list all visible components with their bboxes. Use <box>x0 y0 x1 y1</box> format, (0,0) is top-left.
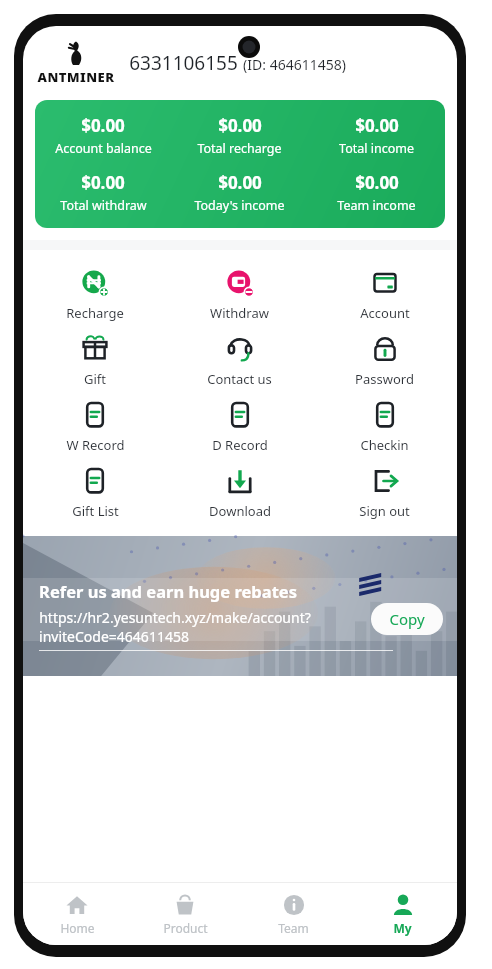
staticText: 6331106155 <box>129 50 238 76</box>
button[interactable]: D Record <box>167 394 312 460</box>
button[interactable]: $0.00 <box>35 171 171 214</box>
staticText: Team <box>278 920 309 936</box>
staticText: Account balance <box>55 140 152 157</box>
staticText: Team income <box>337 197 416 214</box>
staticText: My <box>393 920 412 936</box>
staticText: Refer us and earn huge rebates <box>39 580 297 602</box>
staticText: Today's income <box>194 197 285 214</box>
button[interactable]: $0.00 <box>308 171 445 214</box>
staticText: W Record <box>66 436 125 454</box>
staticText: $0.00 <box>218 171 262 194</box>
button[interactable]: $0.00 <box>171 114 308 157</box>
button[interactable]: $0.00 <box>171 171 308 214</box>
staticText: https://hr2.yesuntech.xyz/make/account? <box>39 608 311 627</box>
staticText: Product <box>163 920 208 936</box>
button[interactable]: Checkin <box>312 394 457 460</box>
button[interactable]: Copy <box>371 603 443 635</box>
button[interactable]: $0.00 <box>35 114 171 157</box>
button[interactable]: Refer us and earn huge rebates <box>23 536 457 676</box>
button[interactable]: Recharge <box>23 262 167 328</box>
staticText: Gift List <box>72 502 119 520</box>
button[interactable]: Gift List <box>23 460 167 526</box>
staticText: Password <box>355 370 414 388</box>
staticText: Contact us <box>207 370 272 388</box>
staticText: Account <box>360 304 410 322</box>
staticText: $0.00 <box>355 171 399 194</box>
button[interactable]: Team <box>239 883 348 945</box>
staticText: Withdraw <box>210 304 269 322</box>
staticText: $0.00 <box>81 114 125 137</box>
button[interactable]: Withdraw <box>167 262 312 328</box>
staticText: $0.00 <box>218 114 262 137</box>
staticText: $0.00 <box>355 114 399 137</box>
staticText: Total income <box>339 140 414 157</box>
staticText: Download <box>209 502 271 520</box>
button[interactable]: Account <box>312 262 457 328</box>
button[interactable]: Gift <box>23 328 167 394</box>
staticText: Home <box>60 920 95 936</box>
staticText: Copy <box>389 609 425 629</box>
staticText: Total recharge <box>197 140 282 157</box>
staticText: Recharge <box>66 304 124 322</box>
button[interactable]: Home <box>23 883 131 945</box>
staticText: Sign out <box>359 502 410 520</box>
staticText: $0.00 <box>81 171 125 194</box>
staticText: Total withdraw <box>60 197 147 214</box>
button[interactable]: W Record <box>23 394 167 460</box>
button[interactable]: Sign out <box>312 460 457 526</box>
button[interactable]: My <box>348 883 457 945</box>
button[interactable]: Product <box>131 883 239 945</box>
staticText: D Record <box>212 436 268 454</box>
button[interactable]: Password <box>312 328 457 394</box>
staticText: Gift <box>84 370 106 388</box>
staticText: Checkin <box>360 436 409 454</box>
button[interactable]: $0.00 <box>308 114 445 157</box>
button[interactable]: Contact us <box>167 328 312 394</box>
button[interactable]: Download <box>167 460 312 526</box>
staticText: inviteCode=464611458 <box>39 627 189 646</box>
staticText: (ID: 464611458) <box>243 55 346 74</box>
staticText: ANTMINER <box>37 68 115 86</box>
